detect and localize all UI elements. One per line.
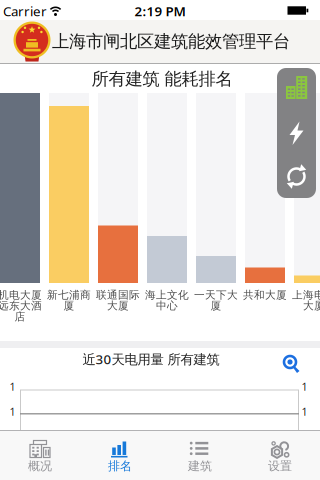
button[interactable]: 建筑 xyxy=(160,431,240,480)
staticText: 设置 xyxy=(268,459,292,473)
button[interactable]: 放大查看 xyxy=(279,351,305,377)
staticText: 机电大厦 xyxy=(0,288,42,301)
staticText: 大厦 xyxy=(303,299,320,312)
staticText: 1 xyxy=(301,379,307,394)
staticText: 一天下大 xyxy=(194,288,238,301)
button[interactable]: 刷新 xyxy=(277,155,316,198)
staticText: 概况 xyxy=(28,459,52,473)
staticText: 厦 xyxy=(210,299,221,312)
staticText: 上海市闸北区建筑能效管理平台 xyxy=(52,31,290,52)
staticText: 新七浦商 xyxy=(47,288,91,301)
staticText: 厦 xyxy=(63,299,74,312)
staticText: 1 xyxy=(301,404,307,419)
staticText: 2:19 PM xyxy=(134,2,185,20)
button[interactable]: 能耗 xyxy=(277,111,316,154)
button[interactable]: 概况 xyxy=(0,431,80,480)
staticText: 近30天电用量 所有建筑 xyxy=(82,350,219,368)
staticText: 1 xyxy=(9,379,15,394)
staticText: 大厦 xyxy=(107,299,129,312)
staticText: 海上文化 xyxy=(145,288,189,301)
staticText: 所有建筑 能耗排名 xyxy=(91,68,232,90)
button[interactable]: 排名 xyxy=(80,431,160,480)
staticText: 上海电气 xyxy=(292,288,320,301)
staticText: 联通国际 xyxy=(96,288,140,301)
button[interactable]: 设置 xyxy=(240,431,320,480)
staticText: 店 xyxy=(14,310,25,323)
staticText: Carrier xyxy=(3,2,47,20)
staticText: 共和大厦 xyxy=(243,288,287,301)
staticText: 建筑 xyxy=(188,459,212,473)
staticText: 远东大酒 xyxy=(0,299,42,312)
staticText: 1 xyxy=(9,404,15,419)
button[interactable]: 建筑列表 xyxy=(277,68,316,111)
staticText: 排名 xyxy=(108,459,132,473)
staticText: 中心 xyxy=(156,299,178,312)
